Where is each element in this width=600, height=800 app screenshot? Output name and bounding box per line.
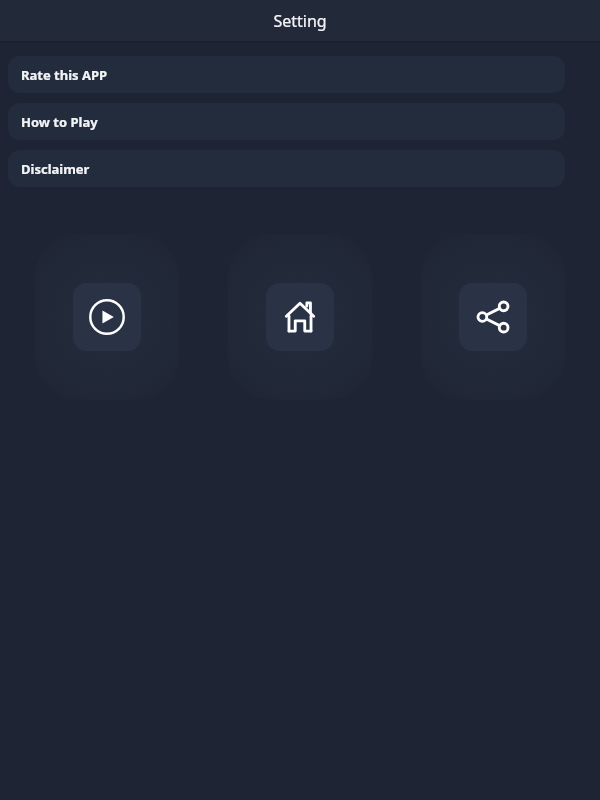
staticText: Disclaimer [21,160,90,178]
button[interactable]: Rate this APP [8,56,565,93]
button[interactable]: Home [266,283,334,351]
button[interactable]: Share [459,283,527,351]
staticText: Setting [273,10,327,32]
staticText: Rate this APP [21,66,108,84]
staticText: How to Play [21,113,98,131]
button[interactable]: Play [73,283,141,351]
button[interactable]: Disclaimer [8,150,565,187]
button[interactable]: How to Play [8,103,565,140]
